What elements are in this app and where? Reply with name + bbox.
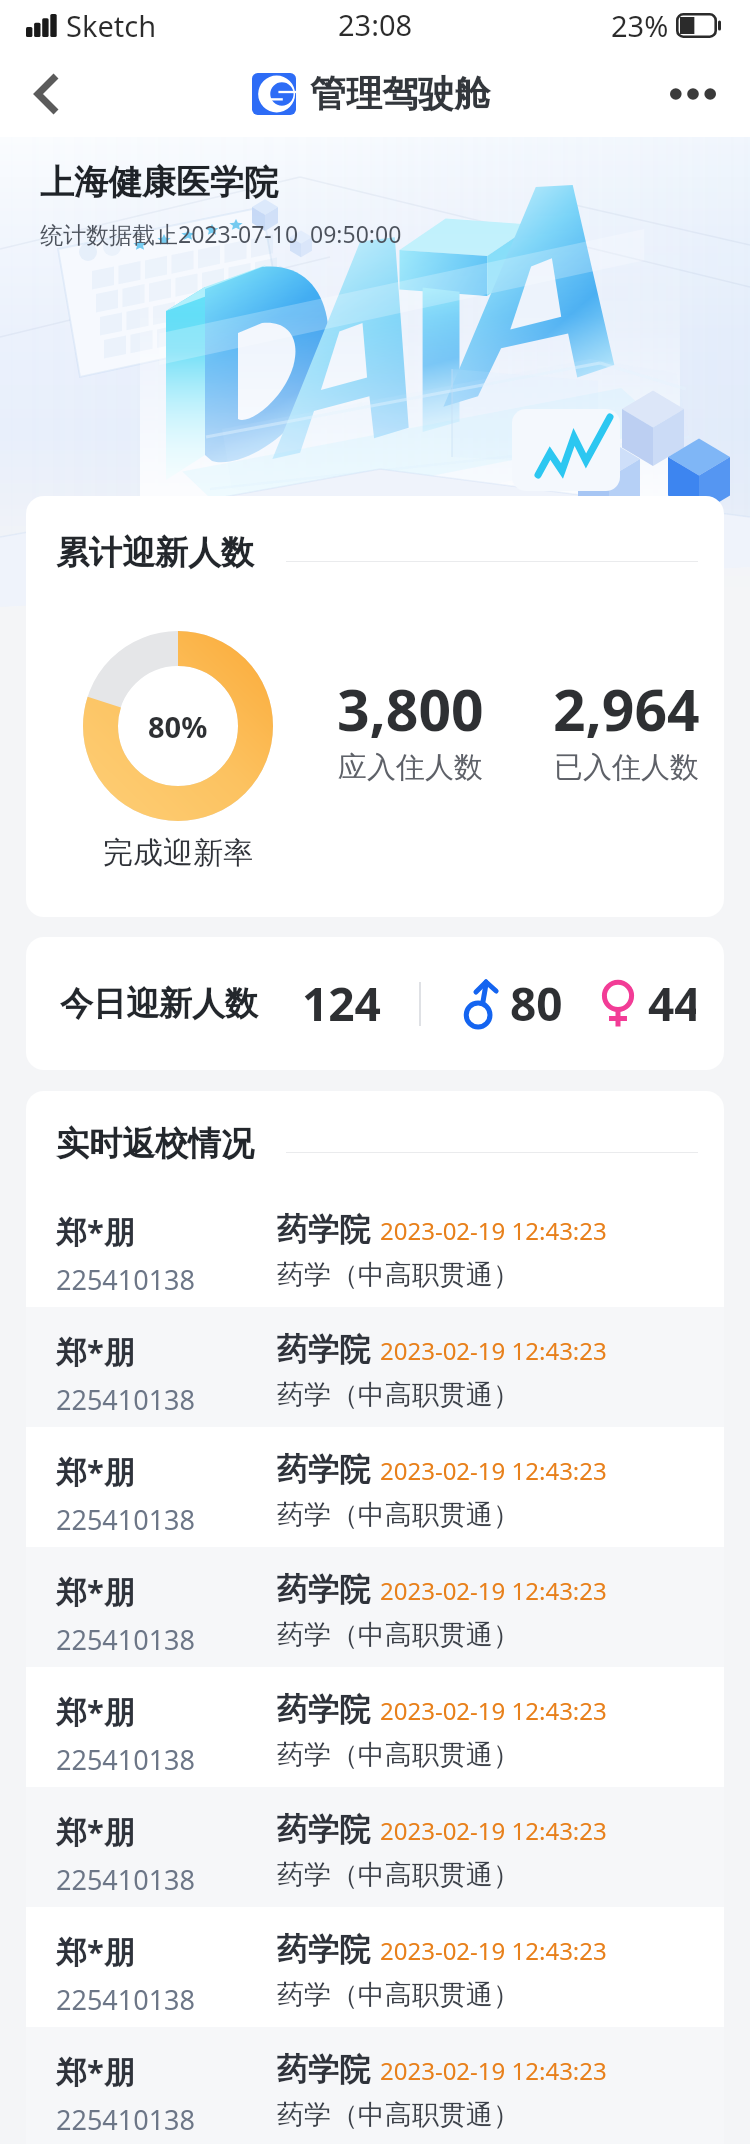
- button[interactable]: 郑*朋: [26, 1907, 724, 2027]
- staticText: 郑*朋: [56, 1930, 135, 1972]
- staticText: 23:08: [338, 5, 413, 44]
- staticText: 郑*朋: [56, 1450, 135, 1492]
- staticText: 2023-02-19 12:43:23: [380, 1214, 607, 1247]
- staticText: 郑*朋: [56, 1570, 135, 1612]
- staticText: 225410138: [56, 1861, 195, 1898]
- staticText: 2023-02-19 12:43:23: [380, 1574, 607, 1607]
- staticText: 2023-02-19 12:43:23: [380, 2054, 607, 2087]
- staticText: 225410138: [56, 1501, 195, 1538]
- staticText: 实时返校情况: [56, 1123, 254, 1165]
- staticText: 23%: [611, 6, 669, 45]
- button[interactable]: 郑*朋: [26, 1307, 724, 1427]
- staticText: 44: [648, 972, 696, 1035]
- button[interactable]: 郑*朋: [26, 1787, 724, 1907]
- staticText: 2023-02-19 12:43:23: [380, 1334, 607, 1367]
- staticText: 郑*朋: [56, 2050, 135, 2092]
- staticText: 药学（中高职贯通）: [277, 1978, 520, 2012]
- staticText: 3,800: [337, 670, 484, 748]
- staticText: 管理驾驶舱: [310, 71, 490, 116]
- staticText: 225410138: [56, 1741, 195, 1778]
- staticText: 已入住人数: [554, 749, 699, 786]
- button[interactable]: Back: [8, 56, 84, 132]
- staticText: 药学院: [277, 1930, 370, 1969]
- staticText: 郑*朋: [56, 1690, 135, 1732]
- staticText: 2023-02-19 12:43:23: [380, 1814, 607, 1847]
- button[interactable]: 郑*朋: [26, 1427, 724, 1547]
- staticText: 225410138: [56, 1981, 195, 2018]
- staticText: 80: [510, 972, 563, 1035]
- staticText: 225410138: [56, 1621, 195, 1658]
- staticText: 今日迎新人数: [60, 983, 258, 1025]
- staticText: 郑*朋: [56, 1810, 135, 1852]
- staticText: 药学院: [277, 1810, 370, 1849]
- staticText: 124: [302, 972, 381, 1035]
- staticText: 2,964: [553, 670, 700, 748]
- staticText: Sketch: [66, 6, 157, 45]
- staticText: 药学（中高职贯通）: [277, 2098, 520, 2132]
- staticText: 2023-02-19 12:43:23: [380, 1934, 607, 1967]
- staticText: 药学院: [277, 1450, 370, 1489]
- staticText: 225410138: [56, 2101, 195, 2138]
- staticText: 药学（中高职贯通）: [277, 1858, 520, 1892]
- button[interactable]: 郑*朋: [26, 1187, 724, 1307]
- button[interactable]: 郑*朋: [26, 1667, 724, 1787]
- staticText: 药学院: [277, 2050, 370, 2089]
- staticText: 郑*朋: [56, 1210, 135, 1252]
- staticText: 上海健康医学院: [40, 161, 278, 204]
- staticText: 2023-02-19 12:43:23: [380, 1454, 607, 1487]
- button[interactable]: 郑*朋: [26, 2027, 724, 2144]
- staticText: 药学院: [277, 1570, 370, 1609]
- staticText: 药学院: [277, 1690, 370, 1729]
- staticText: 累计迎新人数: [56, 532, 254, 574]
- staticText: 统计数据截止2023-07-10 09:50:00: [40, 218, 402, 249]
- staticText: 药学（中高职贯通）: [277, 1498, 520, 1532]
- staticText: 225410138: [56, 1261, 195, 1298]
- staticText: 应入住人数: [338, 749, 483, 786]
- button[interactable]: More options: [658, 59, 728, 129]
- staticText: 郑*朋: [56, 1330, 135, 1372]
- staticText: 225410138: [56, 1381, 195, 1418]
- staticText: 药学（中高职贯通）: [277, 1258, 520, 1292]
- staticText: 2023-02-19 12:43:23: [380, 1694, 607, 1727]
- staticText: 药学（中高职贯通）: [277, 1618, 520, 1652]
- staticText: 完成迎新率: [103, 834, 253, 872]
- staticText: 药学院: [277, 1210, 370, 1249]
- staticText: 80%: [148, 707, 208, 746]
- button[interactable]: 郑*朋: [26, 1547, 724, 1667]
- staticText: 药学（中高职贯通）: [277, 1738, 520, 1772]
- staticText: 药学院: [277, 1330, 370, 1369]
- staticText: 药学（中高职贯通）: [277, 1378, 520, 1412]
